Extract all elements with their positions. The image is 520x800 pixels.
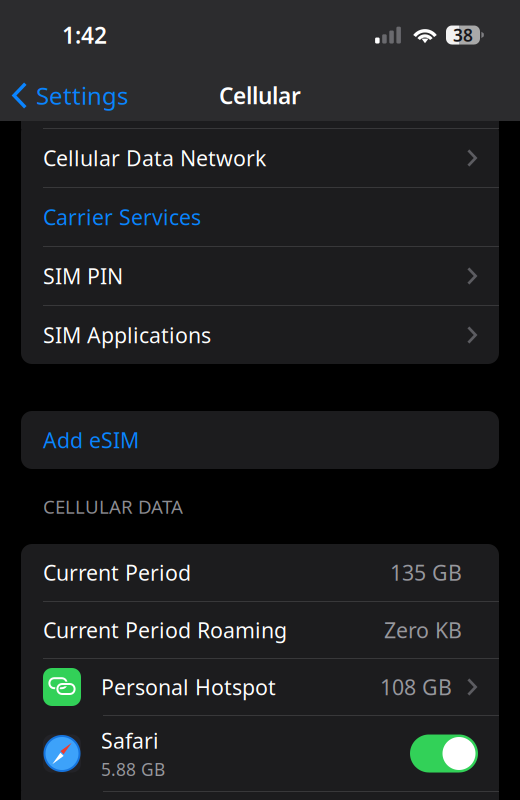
staticText: Zero KB [384,616,462,644]
staticText: Current Period [43,558,191,587]
button[interactable]: Add eSIM [21,411,499,469]
button[interactable]: Carrier Services [21,188,499,246]
staticText: Current Period Roaming [43,616,287,644]
staticText: Add eSIM [43,426,139,454]
button[interactable]: Current Period Roaming [21,602,499,658]
staticText: SIM PIN [43,262,123,290]
button[interactable]: Current Period [21,544,499,601]
staticText: Cellular Data Network [43,144,266,172]
button[interactable]: Safari [21,716,499,791]
button[interactable]: Settings [0,70,136,121]
button[interactable]: Cellular Data Network [21,129,499,187]
staticText: Carrier Services [43,203,201,231]
staticText: SIM Applications [43,321,211,349]
staticText: Cellular [219,80,301,110]
button[interactable]: Personal Hotspot [21,659,499,715]
staticText: CELLULAR DATA [43,494,183,519]
button[interactable]: SIM Applications [21,306,499,364]
staticText: 108 GB [380,673,452,701]
staticText: 38 [453,23,473,46]
button[interactable]: SIM PIN [21,247,499,305]
staticText: 5.88 GB [101,758,165,781]
staticText: 1:42 [62,20,107,50]
staticText: Safari [101,726,159,755]
staticText: Personal Hotspot [101,673,276,701]
staticText: 135 GB [390,558,462,587]
staticText: Settings [36,80,128,111]
